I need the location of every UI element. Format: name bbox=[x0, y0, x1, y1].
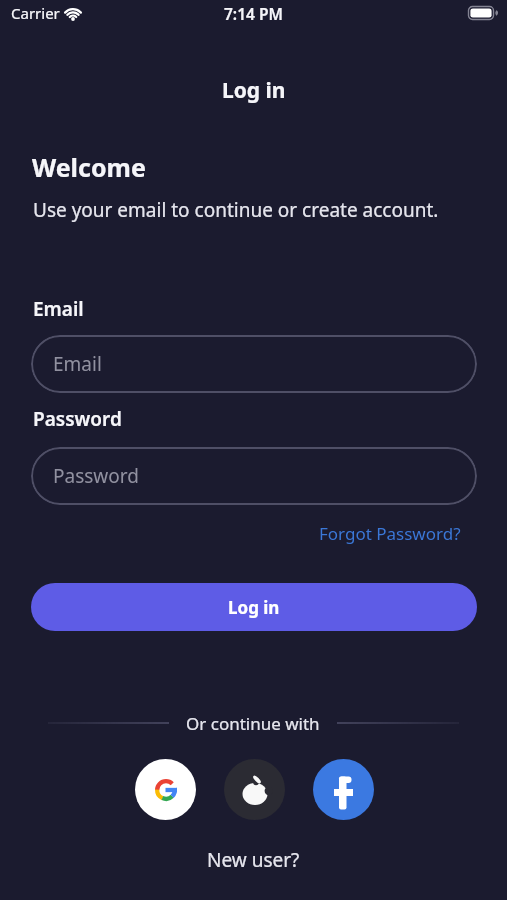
staticText: Welcome bbox=[32, 150, 146, 184]
button[interactable]: Forgot Password? bbox=[319, 522, 461, 545]
button[interactable]: Password bbox=[31, 447, 477, 505]
button[interactable] bbox=[224, 759, 285, 820]
button[interactable]: Email bbox=[31, 335, 477, 393]
staticText: Or continue with bbox=[186, 712, 320, 734]
staticText: Email bbox=[53, 351, 102, 377]
staticText: Forgot Password? bbox=[319, 522, 461, 545]
button[interactable] bbox=[135, 759, 196, 820]
staticText: 7:14 PM bbox=[224, 3, 283, 24]
button[interactable] bbox=[313, 759, 374, 820]
staticText: Password bbox=[53, 463, 139, 489]
staticText: Log in bbox=[222, 76, 286, 105]
staticText: Use your email to continue or create acc… bbox=[33, 197, 439, 223]
staticText: Carrier bbox=[11, 3, 60, 23]
staticText: Log in bbox=[228, 596, 280, 619]
staticText: New user? bbox=[207, 847, 300, 873]
button[interactable]: Log in bbox=[31, 583, 477, 631]
button[interactable]: New user? bbox=[207, 847, 300, 873]
staticText: Email bbox=[33, 296, 84, 322]
staticText: Password bbox=[33, 406, 122, 432]
